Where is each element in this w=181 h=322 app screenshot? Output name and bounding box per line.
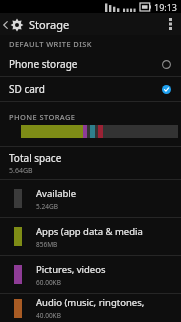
staticText: 40.00KB [36, 311, 61, 320]
staticText: SD card [9, 82, 162, 96]
other: Back [2, 19, 9, 31]
staticText: DEFAULT WRITE DISK [9, 39, 92, 49]
button[interactable]: More options [159, 13, 181, 35]
staticText: PHONE STORAGE [9, 112, 76, 122]
staticText: Total space [9, 151, 62, 165]
button[interactable]: Phone storage [0, 52, 181, 76]
staticText: 19:13 [154, 1, 178, 13]
button[interactable]: Available [0, 180, 181, 217]
staticText: Apps (app data & media content) [36, 225, 175, 238]
button[interactable]: Total space [0, 147, 181, 179]
staticText: 5.64GB [9, 166, 33, 176]
button[interactable]: Back [0, 17, 76, 32]
button[interactable]: SD card [0, 77, 181, 101]
button[interactable]: Audio (music, ringtones, podcasts, etc.) [0, 294, 181, 322]
staticText: Audio (music, ringtones, podcasts, etc.) [36, 296, 175, 309]
staticText: 60.00KB [36, 278, 61, 287]
button[interactable]: Apps (app data & media content) [0, 218, 181, 255]
button[interactable]: Pictures, videos [0, 256, 181, 293]
staticText: Storage [29, 17, 70, 32]
staticText: 856MB [36, 240, 58, 249]
staticText: 5.24GB [36, 202, 58, 211]
staticText: Pictures, videos [36, 263, 106, 276]
staticText: Phone storage [9, 57, 162, 71]
staticText: Available [36, 187, 77, 200]
